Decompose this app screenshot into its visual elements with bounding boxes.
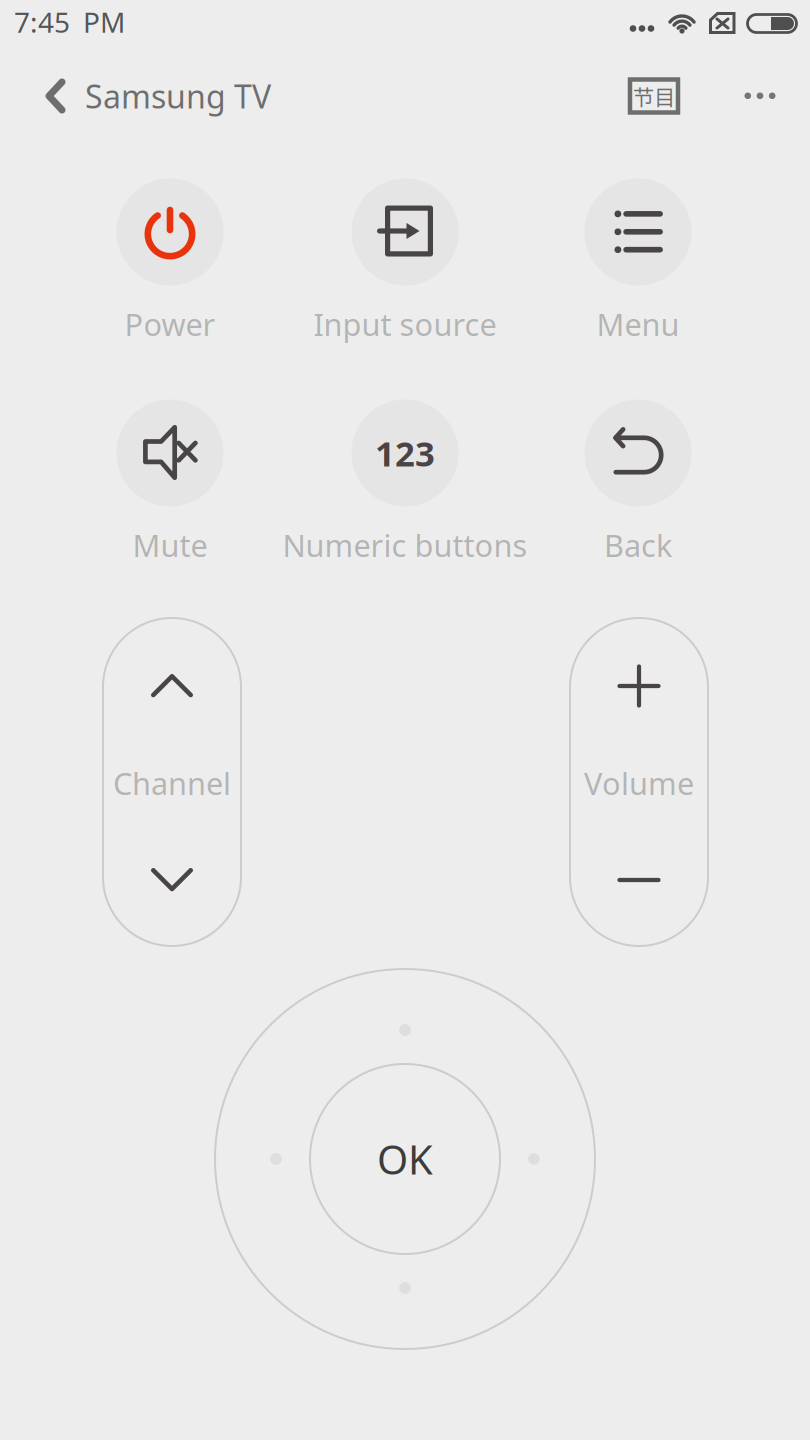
staticText: Volume (584, 763, 694, 803)
button[interactable]: Program guide (610, 52, 698, 140)
button[interactable]: Channel up (103, 624, 241, 748)
staticText: Samsung TV (85, 75, 271, 117)
staticText: 节目 (633, 81, 675, 111)
button[interactable]: Samsung TV (0, 52, 330, 140)
button[interactable]: Input source (275, 178, 535, 358)
staticText: Menu (596, 304, 679, 344)
staticText: Numeric buttons (282, 525, 527, 565)
staticText: Mute (132, 525, 207, 565)
button[interactable]: Power (40, 178, 300, 358)
staticText: 7:45 (14, 3, 70, 41)
button[interactable]: Mute (40, 399, 300, 579)
staticText: Input source (313, 304, 496, 344)
button[interactable]: Menu (508, 178, 768, 358)
button[interactable]: Volume down (570, 818, 708, 942)
staticText: Back (604, 525, 672, 565)
staticText: Channel (113, 763, 231, 803)
staticText: OK (377, 1132, 433, 1185)
button[interactable]: Channel down (103, 818, 241, 942)
button[interactable]: 123 (275, 399, 535, 579)
button[interactable]: OK (310, 1064, 500, 1254)
button[interactable]: Volume up (570, 624, 708, 748)
button[interactable]: Back (508, 399, 768, 579)
button[interactable]: More options (716, 52, 804, 140)
staticText: 123 (375, 430, 435, 476)
staticText: Power (124, 304, 215, 344)
staticText: PM (83, 3, 125, 41)
